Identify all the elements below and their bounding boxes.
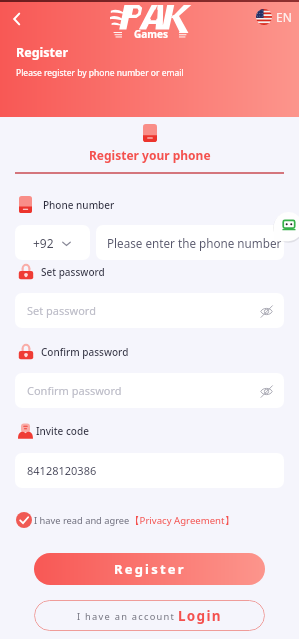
- staticText: Phone number: [43, 198, 115, 212]
- button[interactable]: Register: [34, 553, 265, 585]
- staticText: I have an account: [77, 610, 176, 623]
- other: PAK Games: [110, 3, 190, 41]
- staticText: Register: [16, 44, 69, 61]
- staticText: Register your phone: [89, 147, 211, 163]
- staticText: Register: [114, 560, 186, 578]
- staticText: Confirm password: [27, 383, 122, 398]
- staticText: EN: [276, 9, 292, 25]
- staticText: Set password: [41, 265, 105, 279]
- staticText: Please register by phone number or email: [16, 67, 184, 79]
- staticText: I have read and agree: [34, 514, 130, 527]
- staticText: Invite code: [36, 424, 89, 438]
- button[interactable]: 84128120386: [15, 453, 284, 488]
- staticText: Set password: [27, 303, 96, 318]
- button[interactable]: Customer service: [273, 212, 299, 243]
- button[interactable]: I have read and agree: [16, 512, 235, 528]
- staticText: +92: [33, 235, 54, 251]
- button[interactable]: Back: [4, 6, 30, 32]
- staticText: Confirm password: [41, 345, 129, 359]
- button[interactable]: Confirm password: [15, 373, 284, 408]
- button[interactable]: Show password: [257, 382, 275, 400]
- button[interactable]: Set password: [15, 293, 284, 328]
- button[interactable]: +92: [15, 225, 90, 260]
- button[interactable]: I have an account: [34, 600, 265, 631]
- button[interactable]: Show password: [257, 302, 275, 320]
- staticText: Games: [134, 27, 168, 41]
- staticText: 84128120386: [27, 463, 97, 478]
- staticText: Please enter the phone number: [107, 235, 282, 251]
- button[interactable]: EN: [256, 9, 292, 25]
- staticText: Login: [178, 607, 222, 625]
- staticText: 【Privacy Agreement】: [130, 514, 235, 527]
- button[interactable]: Please enter the phone number: [96, 225, 284, 260]
